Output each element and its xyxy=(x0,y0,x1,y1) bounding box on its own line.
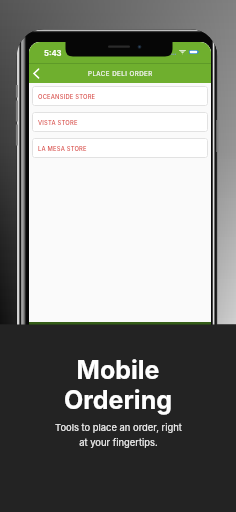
staticText: Mobile Ordering xyxy=(64,355,172,415)
staticText: LA MESA STORE xyxy=(38,145,87,152)
button[interactable]: Back xyxy=(29,64,43,83)
staticText: 5:43 xyxy=(44,48,62,57)
button[interactable]: OCEANSIDE STORE xyxy=(32,86,208,106)
staticText: VISTA STORE xyxy=(38,119,78,126)
button[interactable]: VISTA STORE xyxy=(32,112,208,132)
button[interactable]: LA MESA STORE xyxy=(32,138,208,158)
staticText: OCEANSIDE STORE xyxy=(38,93,96,100)
staticText: Tools to place an order, right at your f… xyxy=(55,422,182,448)
staticText: PLACE DELI ORDER xyxy=(88,70,153,78)
